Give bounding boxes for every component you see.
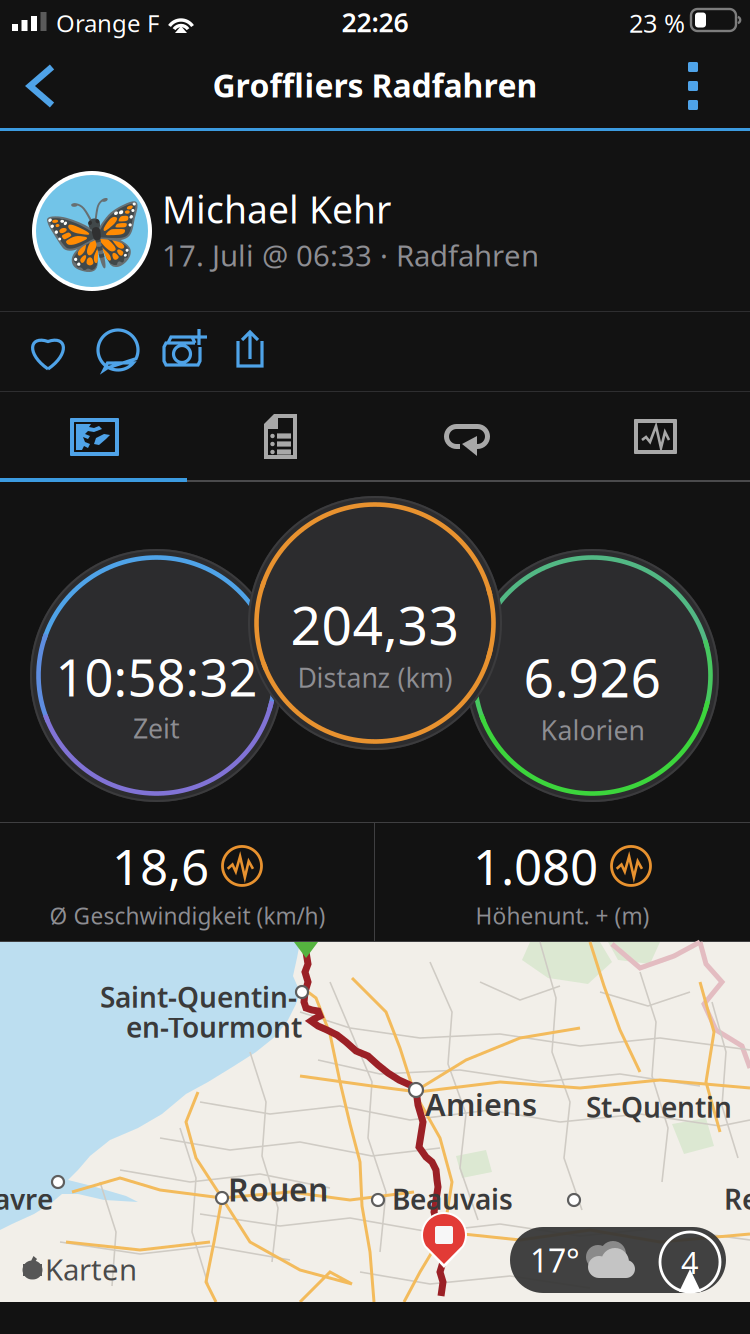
staticText: Rei	[724, 1180, 750, 1218]
staticText: Orange F	[56, 7, 159, 39]
staticText: 17. Juli @ 06:33 · Radfahren	[162, 235, 539, 274]
staticText: St-Quentin	[586, 1088, 732, 1126]
staticText: Zeit	[133, 710, 180, 746]
staticText: Distanz (km)	[297, 660, 452, 695]
staticText: 23 %	[629, 6, 685, 40]
button[interactable]: Details	[187, 392, 374, 480]
staticText: Karten	[45, 1249, 137, 1288]
staticText: Groffliers Radfahren	[212, 64, 537, 106]
staticText: 4	[681, 1242, 699, 1282]
staticText: Amiens	[425, 1084, 537, 1124]
staticText: avre	[0, 1180, 53, 1218]
staticText: en-Tourmont	[126, 1008, 302, 1046]
staticText: 17°	[530, 1239, 580, 1281]
staticText: 22:26	[341, 4, 408, 40]
staticText: 1.080	[473, 833, 598, 899]
button[interactable]: Share	[216, 312, 284, 392]
button[interactable]: Add photo	[148, 312, 216, 392]
button[interactable]: Map	[0, 392, 187, 480]
staticText: Kalorien	[540, 712, 644, 748]
button[interactable]: Laps	[374, 392, 561, 480]
button[interactable]: Graphs	[561, 392, 748, 480]
staticText: Beauvais	[392, 1180, 513, 1218]
staticText: Michael Kehr	[162, 184, 391, 234]
staticText: 18,6	[112, 833, 209, 899]
button[interactable]: Like	[14, 312, 82, 392]
staticText: Ø Geschwindigkeit (km/h)	[49, 901, 325, 931]
staticText: Höhenunt. + (m)	[475, 901, 649, 931]
staticText: 10:58:32	[55, 643, 257, 710]
staticText: 🦋	[40, 186, 143, 280]
staticText: Rouen	[228, 1168, 328, 1210]
button[interactable]: More options	[654, 55, 732, 117]
staticText: 6.926	[523, 641, 661, 712]
button[interactable]: Back	[8, 55, 86, 117]
button[interactable]: Comment	[83, 312, 151, 392]
staticText: Saint-Quentin-	[100, 978, 297, 1016]
staticText: 204,33	[290, 589, 459, 660]
